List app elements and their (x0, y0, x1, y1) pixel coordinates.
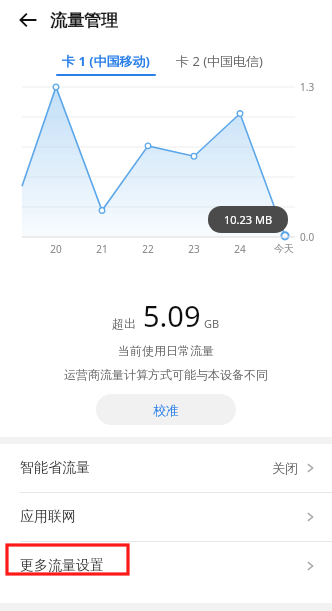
staticText: 23 (188, 242, 200, 256)
button[interactable]: 卡 2 (中国电信) (176, 52, 263, 76)
staticText: 更多流量设置 (20, 557, 104, 575)
staticText: 21 (96, 242, 108, 256)
staticText: GB (204, 316, 220, 331)
staticText: 22 (142, 242, 154, 256)
staticText: 应用联网 (20, 508, 76, 526)
staticText: 校准 (153, 402, 179, 418)
staticText: 24 (234, 242, 246, 256)
staticText: 20 (50, 242, 62, 256)
button[interactable]: 应用联网 (0, 493, 332, 541)
staticText: 运营商流量计算方式可能与本设备不同 (0, 367, 332, 382)
button[interactable]: 校准 (96, 394, 236, 425)
staticText: 智能省流量 (20, 459, 90, 477)
staticText: 1.3 (300, 80, 315, 94)
staticText: 今天 (274, 242, 294, 255)
button[interactable]: Back (12, 4, 44, 36)
staticText: 流量管理 (50, 10, 118, 31)
staticText: 5.09 (143, 296, 201, 335)
staticText: 关闭 (272, 460, 298, 476)
button[interactable]: 更多流量设置 (0, 542, 332, 590)
staticText: 卡 2 (中国电信) (176, 52, 263, 70)
staticText: 当前使用日常流量 (0, 343, 332, 358)
staticText: 10.23 MB (224, 212, 273, 227)
staticText: 0.0 (300, 230, 315, 244)
button[interactable]: 卡 1 (中国移动) (56, 52, 156, 76)
button[interactable]: 智能省流量 (0, 444, 332, 492)
staticText: 卡 1 (中国移动) (62, 52, 151, 70)
staticText: 超出 (112, 316, 136, 331)
